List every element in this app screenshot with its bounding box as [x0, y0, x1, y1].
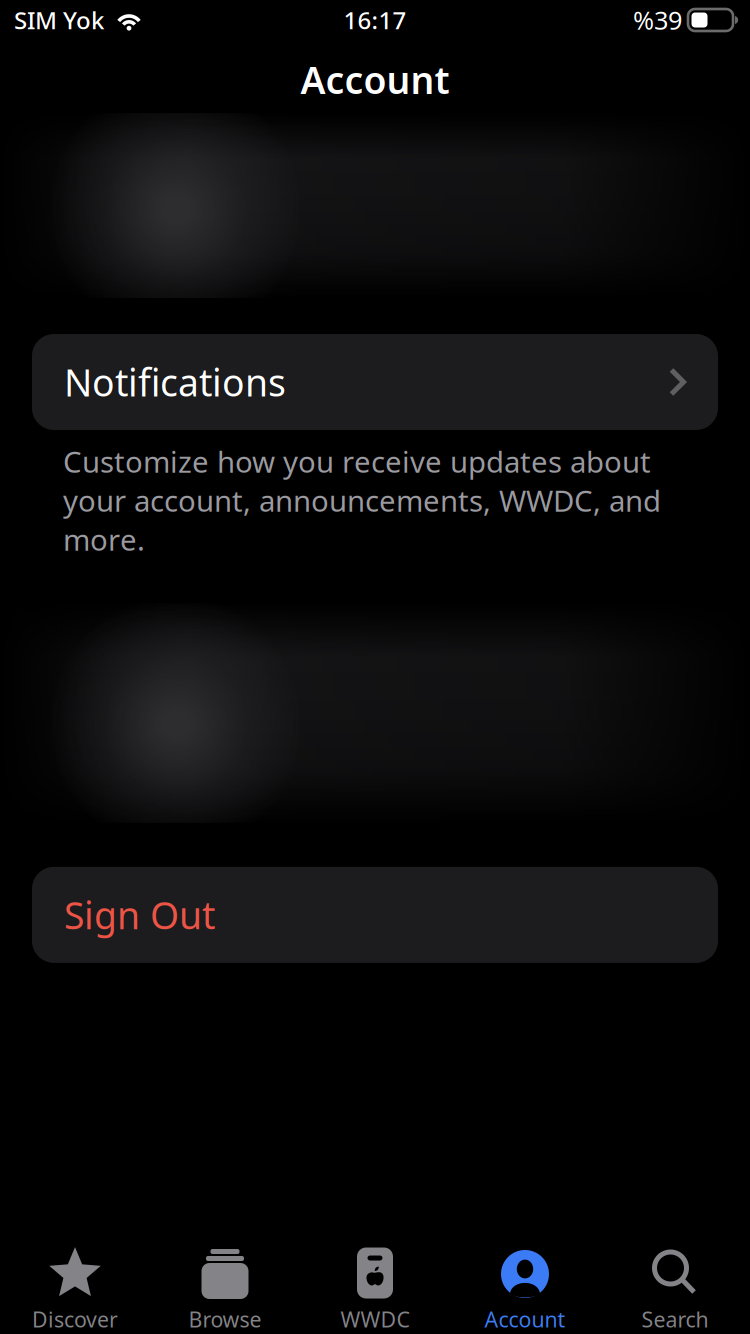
staticText: Customize how you receive updates about …: [63, 442, 661, 559]
staticText: Account: [484, 1305, 565, 1333]
staticText: Search: [641, 1305, 708, 1333]
staticText: Discover: [32, 1305, 118, 1333]
button[interactable]: Search: [600, 1234, 750, 1334]
staticText: Sign Out: [64, 890, 215, 940]
staticText: Browse: [188, 1305, 261, 1333]
staticText: %39: [633, 3, 682, 37]
staticText: 16:17: [343, 4, 406, 36]
button[interactable]: Browse: [150, 1234, 300, 1334]
button[interactable]: Account: [450, 1234, 600, 1334]
button[interactable]: Sign Out: [32, 867, 718, 963]
staticText: SIM Yok: [14, 4, 104, 36]
button[interactable]: Discover: [0, 1234, 150, 1334]
staticText: Notifications: [64, 357, 286, 407]
button[interactable]: Notifications: [32, 334, 718, 430]
staticText: WWDC: [340, 1305, 409, 1333]
button[interactable]: WWDC: [300, 1234, 450, 1334]
staticText: Account: [300, 55, 449, 104]
